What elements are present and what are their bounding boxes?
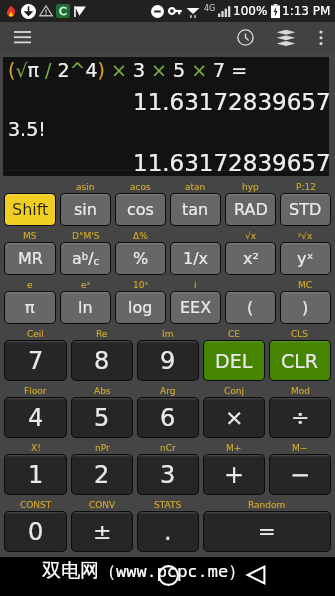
button[interactable]: tan [171, 194, 220, 225]
staticText: CONST [20, 500, 52, 510]
button[interactable]: History [225, 22, 265, 53]
button[interactable]: Shift [5, 194, 55, 225]
button[interactable]: 5 [72, 398, 132, 437]
staticText: (√π / 2^4) × 3 × 5 × 7 = [8, 59, 248, 81]
button[interactable]: 3 [138, 455, 198, 494]
staticText: Δ% [133, 231, 148, 241]
staticText: 7 [28, 347, 44, 375]
staticText: ÷ [291, 405, 310, 431]
button[interactable]: 1/x [171, 243, 220, 274]
staticText: % [133, 249, 149, 268]
button[interactable]: ± [72, 512, 132, 551]
staticText: hyp [242, 182, 259, 192]
button[interactable]: 2 [72, 455, 132, 494]
staticText: Mod [291, 386, 310, 396]
staticText: i [194, 280, 197, 290]
button[interactable]: % [116, 243, 165, 274]
staticText: P:12 [296, 182, 316, 192]
staticText: DEL [215, 350, 253, 372]
staticText: . [164, 518, 172, 546]
button[interactable]: EEX [171, 292, 220, 323]
button[interactable]: 4 [5, 398, 66, 437]
button[interactable]: Menu [0, 22, 44, 53]
button[interactable]: 6 [138, 398, 198, 437]
staticText: 10ˣ [133, 280, 149, 290]
staticText: ± [93, 519, 112, 545]
staticText: D°M'S [72, 231, 100, 241]
staticText: ab/c [72, 249, 100, 268]
staticText: Abs [94, 386, 111, 396]
staticText: 5 [94, 404, 110, 432]
staticText: − [290, 461, 311, 489]
button[interactable]: π [5, 292, 55, 323]
button[interactable]: 9 [138, 341, 198, 380]
button[interactable]: × [204, 398, 264, 437]
staticText: log [128, 298, 153, 317]
staticText: Re [96, 329, 108, 339]
staticText: Floor [24, 386, 47, 396]
button[interactable]: Back [238, 557, 274, 593]
staticText: nPr [95, 443, 110, 453]
button[interactable]: DEL [204, 341, 264, 380]
button[interactable]: − [270, 455, 330, 494]
button[interactable]: yˣ [281, 243, 330, 274]
button[interactable]: STD [281, 194, 330, 225]
button[interactable]: MR [5, 243, 55, 274]
button[interactable]: ab/c [61, 243, 110, 274]
button[interactable]: sin [61, 194, 110, 225]
staticText: π [25, 298, 35, 317]
staticText: + [224, 461, 245, 489]
staticText: cos [127, 200, 154, 219]
staticText: Shift [12, 200, 49, 219]
staticText: CE [228, 329, 240, 339]
button[interactable]: Home [150, 557, 186, 593]
staticText: sin [74, 200, 97, 219]
staticText: Arg [160, 386, 176, 396]
staticText: ʸ√x [298, 231, 313, 241]
button[interactable]: 0 [5, 512, 66, 551]
staticText: 4G [204, 4, 216, 13]
staticText: acos [130, 182, 151, 192]
staticText: ln [78, 298, 93, 317]
button[interactable]: = [204, 512, 330, 551]
button[interactable]: cos [116, 194, 165, 225]
staticText: MS [23, 231, 37, 241]
button[interactable]: + [204, 455, 264, 494]
button[interactable]: x² [226, 243, 275, 274]
staticText: 8 [94, 347, 110, 375]
staticText: ( [247, 298, 254, 317]
button[interactable]: ÷ [270, 398, 330, 437]
staticText: 11.63172839657 [133, 150, 331, 177]
button[interactable]: ln [61, 292, 110, 323]
button[interactable]: RAD [226, 194, 275, 225]
staticText: M+ [226, 443, 242, 453]
button[interactable]: ) [281, 292, 330, 323]
staticText: STD [289, 200, 322, 219]
button[interactable]: ( [226, 292, 275, 323]
staticText: 3.5! [8, 118, 46, 140]
staticText: M− [292, 443, 308, 453]
staticText: tan [182, 200, 209, 219]
staticText: CONV [89, 500, 116, 510]
button[interactable]: 7 [5, 341, 66, 380]
staticText: yˣ [297, 249, 314, 268]
staticText: Im [162, 329, 174, 339]
button[interactable]: CLR [270, 341, 330, 380]
staticText: 0 [28, 518, 44, 546]
staticText: 11.63172839657 [133, 89, 331, 116]
staticText: 6 [160, 404, 176, 432]
staticText: MR [18, 249, 43, 268]
staticText: atan [185, 182, 206, 192]
button[interactable]: 8 [72, 341, 132, 380]
button[interactable]: . [138, 512, 198, 551]
button[interactable]: More options [307, 22, 335, 53]
button[interactable]: 1 [5, 455, 66, 494]
button[interactable]: Layers [265, 22, 307, 53]
staticText: asin [76, 182, 95, 192]
button[interactable]: log [116, 292, 165, 323]
staticText: EEX [180, 298, 212, 317]
staticText: 9 [160, 347, 176, 375]
staticText: Conj [224, 386, 244, 396]
staticText: 1 [28, 461, 44, 489]
staticText: CLR [281, 350, 319, 372]
